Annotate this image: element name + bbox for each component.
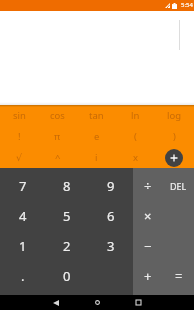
- staticText: 3: [107, 237, 115, 255]
- staticText: .: [21, 267, 25, 285]
- staticText: sin: [13, 109, 26, 122]
- button[interactable]: cos: [38, 105, 77, 126]
- button[interactable]: ×: [133, 201, 163, 231]
- button[interactable]: 0: [45, 261, 89, 291]
- staticText: 0: [63, 267, 71, 285]
- staticText: π: [54, 130, 61, 143]
- staticText: log: [167, 109, 182, 122]
- button[interactable]: Add: [165, 149, 183, 167]
- staticText: tan: [89, 109, 104, 122]
- staticText: x: [133, 151, 139, 164]
- button[interactable]: ): [155, 126, 194, 147]
- button[interactable]: 2: [45, 231, 89, 261]
- staticText: i: [95, 151, 98, 164]
- button[interactable]: e: [77, 126, 116, 147]
- staticText: ÷: [144, 177, 152, 195]
- staticText: ): [173, 130, 176, 143]
- button[interactable]: .: [0, 261, 45, 291]
- staticText: 5: [63, 207, 71, 225]
- button[interactable]: −: [133, 231, 163, 261]
- button[interactable]: 1: [0, 231, 45, 261]
- staticText: e: [94, 130, 100, 143]
- button[interactable]: =: [163, 261, 194, 291]
- button[interactable]: √: [0, 147, 38, 168]
- button[interactable]: 8: [45, 171, 89, 201]
- button[interactable]: ÷: [133, 171, 163, 201]
- button[interactable]: π: [38, 126, 77, 147]
- staticText: 6: [107, 207, 115, 225]
- button[interactable]: ln: [116, 105, 155, 126]
- button[interactable]: Home: [87, 295, 107, 310]
- button[interactable]: 3: [89, 231, 133, 261]
- button[interactable]: [155, 147, 194, 168]
- staticText: −: [144, 237, 152, 255]
- button[interactable]: Recents: [128, 295, 148, 310]
- staticText: +: [144, 267, 152, 285]
- staticText: (: [134, 130, 137, 143]
- staticText: !: [18, 130, 21, 143]
- staticText: 7: [19, 177, 27, 195]
- button[interactable]: Back: [46, 295, 66, 310]
- staticText: 4: [19, 207, 27, 225]
- staticText: cos: [50, 109, 65, 122]
- staticText: 8: [63, 177, 71, 195]
- staticText: =: [175, 267, 183, 285]
- button[interactable]: +: [133, 261, 163, 291]
- staticText: √: [16, 152, 23, 163]
- button[interactable]: 4: [0, 201, 45, 231]
- button[interactable]: DEL: [163, 171, 194, 201]
- button[interactable]: sin: [0, 105, 38, 126]
- button[interactable]: 7: [0, 171, 45, 201]
- staticText: 2: [63, 237, 71, 255]
- staticText: ln: [131, 109, 140, 122]
- staticText: 5:54: [181, 1, 193, 9]
- button[interactable]: 9: [89, 171, 133, 201]
- button[interactable]: 5: [45, 201, 89, 231]
- button[interactable]: (: [116, 126, 155, 147]
- button[interactable]: ^: [38, 147, 77, 168]
- staticText: ×: [144, 207, 152, 225]
- button[interactable]: 6: [89, 201, 133, 231]
- button[interactable]: log: [155, 105, 194, 126]
- button[interactable]: x: [116, 147, 155, 168]
- staticText: 1: [19, 237, 27, 255]
- staticText: 9: [107, 177, 115, 195]
- button[interactable]: tan: [77, 105, 116, 126]
- staticText: DEL: [170, 180, 187, 192]
- staticText: ^: [55, 151, 61, 164]
